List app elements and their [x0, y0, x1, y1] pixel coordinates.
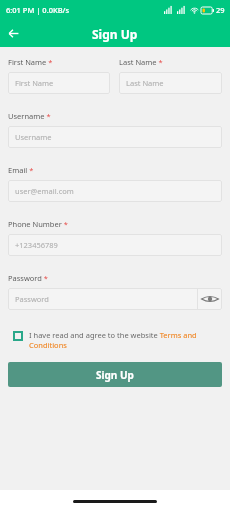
staticText: Sign Up: [96, 368, 134, 382]
staticText: Password *: [8, 273, 49, 283]
staticText: Username *: [8, 111, 51, 121]
staticText: Last Name: [126, 78, 164, 88]
button[interactable]: Password: [8, 288, 222, 310]
button[interactable]: Back: [0, 20, 27, 47]
staticText: First Name *: [8, 57, 53, 67]
staticText: Password: [15, 294, 49, 304]
button[interactable]: Show password: [198, 288, 222, 310]
staticText: First Name: [15, 78, 54, 88]
staticText: I have read and agree to the website Ter…: [29, 330, 222, 350]
staticText: Sign Up: [92, 26, 138, 42]
staticText: Email *: [8, 165, 34, 175]
staticText: Phone Number *: [8, 219, 68, 229]
button[interactable]: +123456789: [8, 234, 222, 256]
staticText: 29: [216, 5, 225, 15]
button[interactable]: Sign Up: [8, 362, 222, 387]
button[interactable]: user@email.com: [8, 180, 222, 202]
staticText: +123456789: [15, 240, 58, 250]
button[interactable]: I have read and agree to the website Ter…: [13, 330, 222, 350]
staticText: 6:01 PM | 0.0KB/s: [6, 5, 70, 15]
staticText: Username: [15, 132, 52, 142]
staticText: user@email.com: [15, 186, 74, 196]
button[interactable]: Username: [8, 126, 222, 148]
staticText: Last Name *: [119, 57, 163, 67]
button[interactable]: Last Name: [119, 72, 222, 94]
button[interactable]: First Name: [8, 72, 110, 94]
